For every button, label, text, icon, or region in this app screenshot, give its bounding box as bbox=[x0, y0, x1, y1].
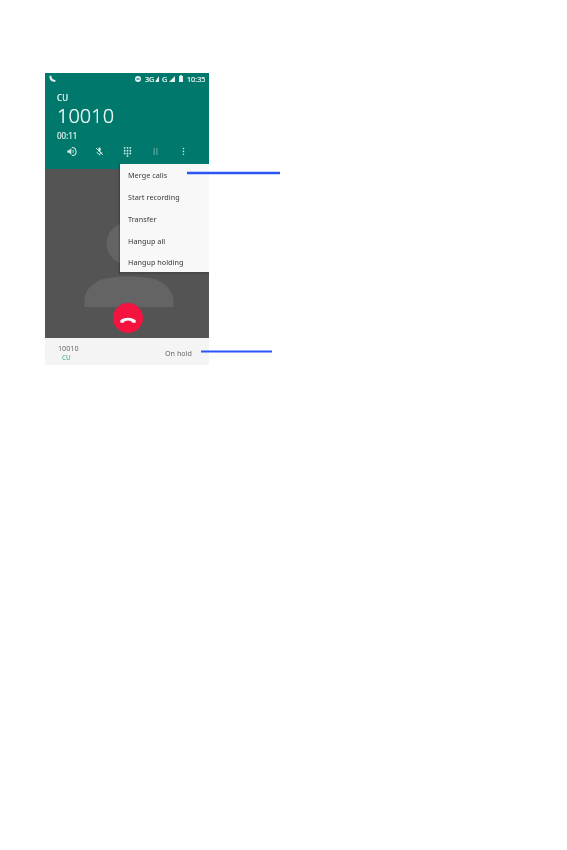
staticText: 10:35 bbox=[187, 74, 206, 84]
staticText: Hangup holding bbox=[128, 257, 184, 267]
button[interactable]: End call bbox=[113, 303, 143, 333]
button[interactable]: 10010 bbox=[45, 338, 209, 365]
button[interactable]: Merge calls bbox=[120, 164, 209, 186]
button[interactable]: Hangup all bbox=[120, 230, 209, 252]
button[interactable]: Dialpad bbox=[118, 142, 136, 160]
staticText: On hold bbox=[165, 348, 192, 358]
button[interactable]: More options bbox=[174, 142, 192, 160]
staticText: Hangup all bbox=[128, 236, 166, 246]
staticText: G bbox=[162, 74, 168, 84]
staticText: CU bbox=[57, 92, 69, 103]
staticText: 10010 bbox=[58, 343, 79, 353]
staticText: Transfer bbox=[128, 214, 157, 224]
button[interactable]: Transfer bbox=[120, 208, 209, 230]
staticText: 3G bbox=[145, 74, 155, 84]
staticText: 00:11 bbox=[57, 130, 78, 141]
button[interactable]: Start recording bbox=[120, 186, 209, 208]
button[interactable]: Mute microphone bbox=[90, 142, 108, 160]
staticText: Merge calls bbox=[128, 170, 168, 180]
button[interactable]: Hangup holding bbox=[120, 252, 209, 272]
staticText: 10010 bbox=[57, 102, 115, 129]
staticText: Start recording bbox=[128, 192, 180, 202]
button[interactable]: Speaker bbox=[62, 142, 80, 160]
button[interactable]: Hold call bbox=[146, 142, 164, 160]
staticText: CU bbox=[62, 353, 71, 362]
